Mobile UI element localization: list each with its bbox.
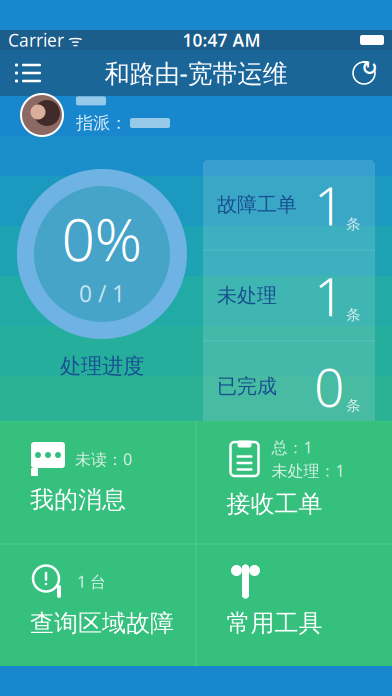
- button[interactable]: 故障工单: [203, 160, 375, 250]
- staticText: 处理进度: [60, 353, 144, 379]
- staticText: 我的消息: [30, 485, 126, 514]
- staticText: 1: [314, 169, 344, 240]
- staticText: 查询区域故障: [30, 608, 174, 638]
- staticText: 0%: [61, 199, 142, 277]
- button[interactable]: 常用工具: [196, 545, 392, 666]
- staticText: ᯤ: [64, 29, 83, 51]
- button[interactable]: 未读：0: [0, 422, 195, 543]
- staticText: 1 台: [77, 571, 106, 592]
- staticText: 未处理: [217, 283, 277, 308]
- staticText: 接收工单: [226, 489, 322, 519]
- staticText: 1: [314, 260, 344, 331]
- button[interactable]: 1 台: [0, 545, 195, 666]
- staticText: Carrier: [8, 28, 64, 51]
- staticText: 条: [346, 215, 361, 233]
- button[interactable]: 总：1: [196, 422, 392, 543]
- staticText: 故障工单: [217, 192, 297, 217]
- staticText: 10:47 AM: [182, 28, 260, 51]
- staticText: 已完成: [217, 374, 277, 399]
- staticText: 0 / 1: [79, 278, 125, 308]
- staticText: 常用工具: [226, 608, 322, 638]
- staticText: 条: [346, 397, 361, 415]
- button[interactable]: Refresh: [336, 51, 392, 95]
- staticText: 未读：0: [75, 448, 132, 470]
- staticText: 0: [314, 351, 344, 422]
- staticText: 总：1: [271, 437, 312, 458]
- button[interactable]: 未处理: [203, 250, 375, 340]
- staticText: 指派：: [76, 112, 127, 134]
- staticText: 条: [346, 306, 361, 324]
- staticText: 和路由-宽带运维: [104, 56, 287, 90]
- button[interactable]: Menu: [0, 51, 56, 95]
- staticText: ↻: [361, 57, 378, 79]
- button[interactable]: 已完成: [203, 341, 375, 431]
- staticText: 未处理：1: [271, 460, 344, 481]
